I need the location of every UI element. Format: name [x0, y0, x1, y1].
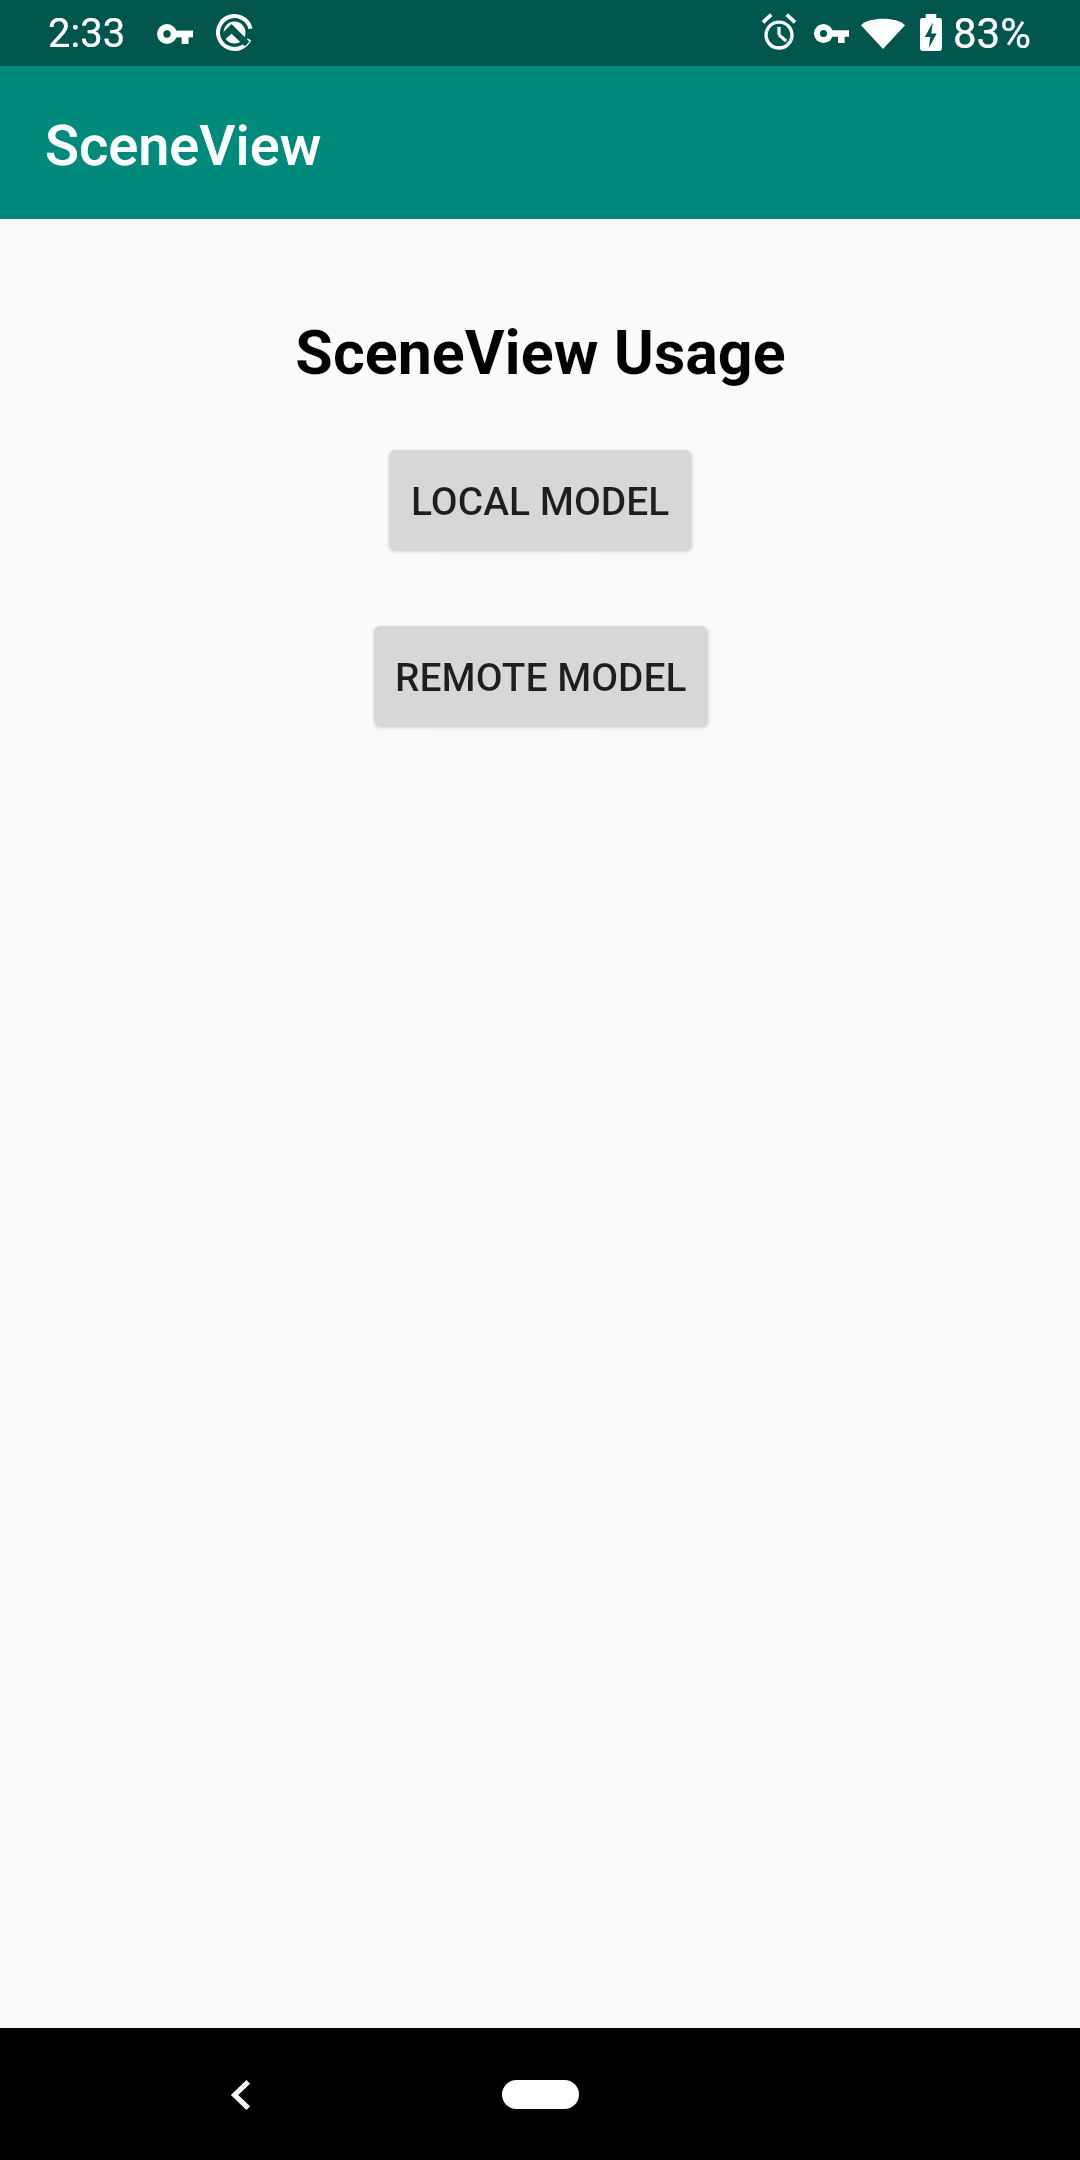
staticText: LOCAL MODEL [411, 479, 670, 525]
staticText: SceneView Usage [295, 317, 786, 388]
staticText: REMOTE MODEL [395, 655, 687, 701]
button[interactable]: Back [178, 2034, 298, 2154]
button[interactable]: REMOTE MODEL [374, 626, 707, 726]
button[interactable]: Home [450, 2049, 630, 2139]
staticText: 2:33 [48, 10, 126, 57]
staticText: SceneView [45, 113, 322, 179]
staticText: 83% [953, 9, 1031, 58]
button[interactable]: LOCAL MODEL [389, 450, 691, 550]
